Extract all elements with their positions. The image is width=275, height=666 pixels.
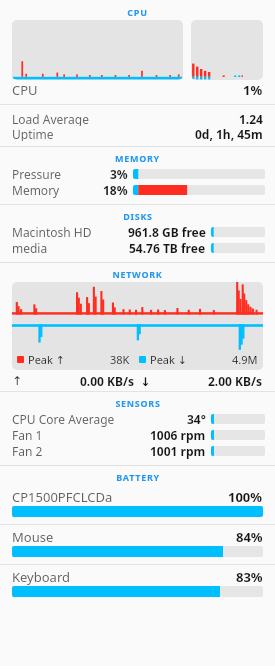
staticText: 84% bbox=[236, 528, 263, 546]
staticText: Fan 2 bbox=[12, 443, 43, 459]
staticText: CPU Core Average bbox=[12, 411, 115, 427]
staticText: MEMORY bbox=[115, 152, 160, 164]
button[interactable]: Network throughput graph bbox=[12, 282, 263, 370]
staticText: SENSORS bbox=[115, 397, 161, 409]
staticText: 34° bbox=[187, 411, 206, 427]
staticText: 18% bbox=[103, 182, 128, 198]
button[interactable]: CPU history graph bbox=[12, 20, 263, 80]
staticText: 1% bbox=[243, 81, 263, 99]
button[interactable]: Macintosh HD bbox=[0, 224, 275, 240]
staticText: 2.00 KB/s bbox=[208, 373, 263, 389]
staticText: Load Average bbox=[12, 111, 89, 126]
button[interactable]: Uptime bbox=[0, 126, 275, 141]
staticText: NETWORK bbox=[112, 268, 163, 280]
staticText: 1.24 bbox=[239, 111, 263, 126]
button[interactable]: Memory bbox=[0, 182, 275, 198]
staticText: Mouse bbox=[12, 528, 54, 546]
staticText: 0.00 KB/s ↓ bbox=[80, 373, 151, 389]
button[interactable]: media bbox=[0, 240, 275, 256]
staticText: DISKS bbox=[123, 210, 153, 222]
staticText: CP1500PFCLCDa bbox=[12, 488, 113, 506]
button[interactable]: Pressure bbox=[0, 166, 275, 182]
staticText: 54.76 TB free bbox=[129, 240, 206, 256]
button[interactable]: Fan 1 bbox=[0, 427, 275, 443]
staticText: 961.8 GB free bbox=[128, 224, 206, 240]
staticText: 3% bbox=[110, 166, 128, 182]
staticText: Fan 1 bbox=[12, 427, 43, 443]
button[interactable]: Fan 2 bbox=[0, 443, 275, 459]
button[interactable]: Load Average bbox=[0, 111, 275, 126]
staticText: 0d, 1h, 45m bbox=[195, 126, 263, 141]
staticText: Keyboard bbox=[12, 568, 71, 586]
staticText: Uptime bbox=[12, 126, 54, 141]
button[interactable]: CPU bbox=[0, 80, 275, 100]
staticText: Memory bbox=[12, 182, 60, 198]
button[interactable]: Keyboard bbox=[0, 565, 275, 604]
staticText: 1001 rpm bbox=[150, 443, 206, 459]
staticText: CPU bbox=[127, 6, 148, 18]
staticText: media bbox=[12, 240, 48, 256]
staticText: ↑ bbox=[12, 374, 23, 388]
staticText: BATTERY bbox=[116, 471, 160, 483]
staticText: Peak ↑ bbox=[28, 352, 65, 367]
staticText: 100% bbox=[228, 488, 263, 506]
staticText: CPU bbox=[12, 81, 38, 99]
staticText: Peak ↓ bbox=[150, 352, 187, 367]
staticText: Macintosh HD bbox=[12, 224, 92, 240]
button[interactable]: Mouse bbox=[0, 525, 275, 564]
button[interactable]: ↑ bbox=[0, 370, 275, 391]
staticText: Pressure bbox=[12, 166, 62, 182]
staticText: 4.9M bbox=[232, 352, 258, 367]
button[interactable]: CP1500PFCLCDa bbox=[0, 485, 275, 524]
button[interactable]: CPU Core Average bbox=[0, 411, 275, 427]
staticText: 38K bbox=[110, 352, 130, 367]
staticText: 83% bbox=[236, 568, 263, 586]
staticText: 1006 rpm bbox=[150, 427, 206, 443]
